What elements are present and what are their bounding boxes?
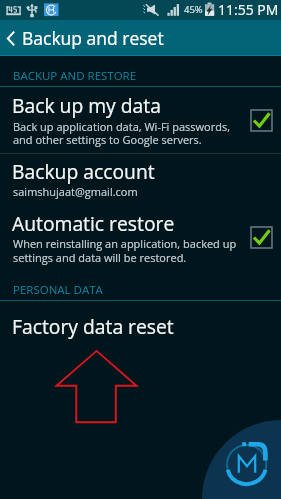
staticText: BACKUP AND RESTORE [13,68,137,84]
staticText: When reinstalling an application, backed… [13,236,237,251]
button[interactable]: Factory data reset [0,301,281,350]
staticText: Back up application data, Wi-Fi password… [13,119,231,134]
staticText: 45% [184,3,203,16]
staticText: PERSONAL DATA [13,282,103,298]
staticText: Back up my data [12,92,161,118]
staticText: settings and data will be restored. [13,250,187,265]
staticText: Backup account [12,158,155,184]
button[interactable]: Automatic restore [0,205,281,275]
button[interactable]: Back up my data [0,87,281,153]
button[interactable]: Checkbox, checked [251,110,272,131]
button[interactable]: Checkbox, checked [251,227,272,248]
staticText: saimshujaat@gmail.com [13,184,138,199]
staticText: Backup and reset [22,26,164,50]
staticText: and other settings to Google servers. [13,132,202,147]
staticText: Automatic restore [12,210,175,236]
button[interactable]: Navigate up [0,20,22,55]
staticText: Factory data reset [12,313,174,339]
other: Mobizen recorder [0,0,281,499]
staticText: 11:55 PM [218,0,279,19]
button[interactable]: Backup account [0,154,281,205]
